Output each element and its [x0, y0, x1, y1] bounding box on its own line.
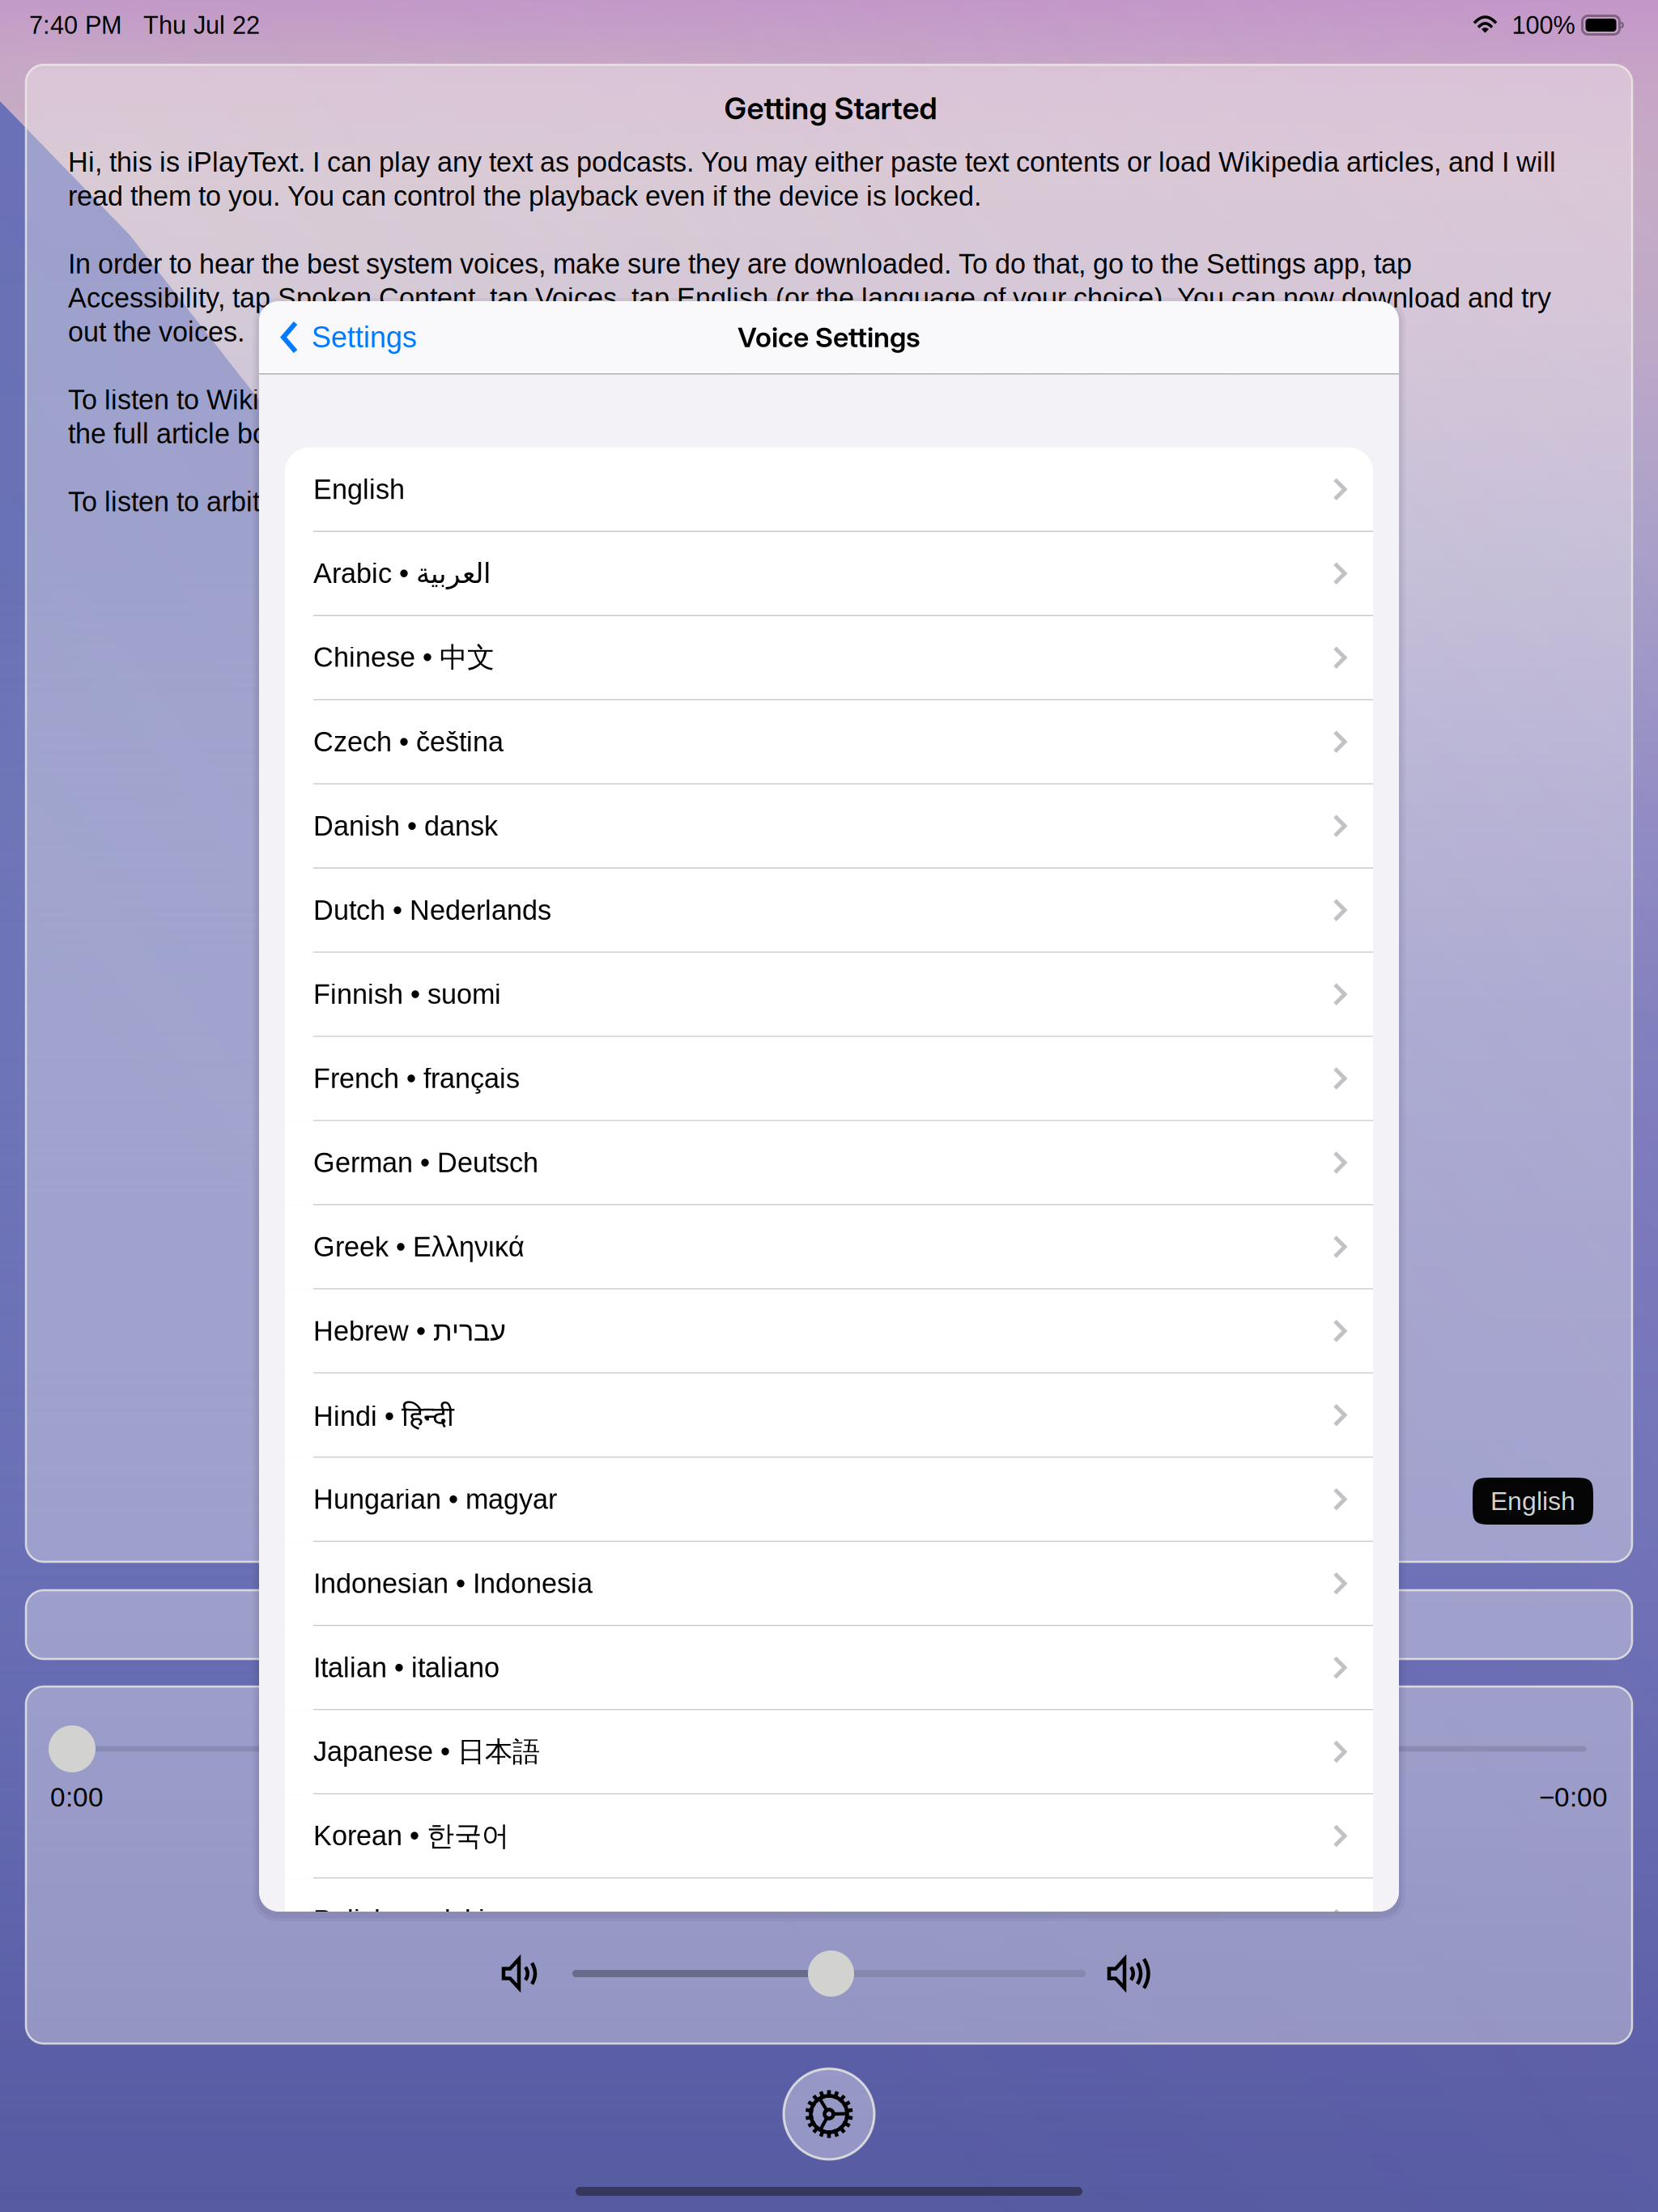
button[interactable]: Polish • polski	[285, 1879, 1373, 1963]
staticText: Hi, this is iPlayText. I can play any te…	[68, 145, 1556, 519]
staticText: Polish • polski	[313, 1903, 485, 1937]
staticText: Voice Settings	[738, 321, 920, 354]
button[interactable]: Wikipedia Original	[1148, 1590, 1428, 1659]
staticText: Chinese • 中文	[313, 639, 495, 677]
staticText: Wikipedia Introduction	[645, 1608, 916, 1642]
button[interactable]: Czech • čeština	[285, 700, 1373, 785]
staticText: Paste Text	[258, 1608, 386, 1642]
button[interactable]: Hindi • हिन्दी	[285, 1374, 1373, 1458]
button[interactable]: Chinese • 中文	[285, 616, 1373, 700]
staticText: Korean • 한국어	[313, 1817, 509, 1855]
staticText: Hebrew • עברית	[313, 1314, 506, 1348]
staticText: Arabic • العربية	[313, 556, 491, 591]
button[interactable]: Greek • Ελληνικά	[285, 1205, 1373, 1290]
staticText: Settings	[312, 321, 417, 353]
button[interactable]: Settings	[259, 301, 432, 373]
staticText: Hindi • हिन्दी	[313, 1394, 454, 1436]
button[interactable]: Indonesian • Indonesia	[285, 1542, 1373, 1626]
staticText: French • français	[313, 1061, 520, 1095]
staticText: Czech • čeština	[313, 725, 504, 759]
staticText: English	[1490, 1487, 1575, 1516]
staticText: Danish • dansk	[313, 809, 498, 843]
button[interactable]: German • Deutsch	[285, 1121, 1373, 1205]
button[interactable]: Korean • 한국어	[285, 1794, 1373, 1879]
staticText: 7:40 PM	[29, 11, 122, 39]
staticText: Thu Jul 22	[122, 11, 260, 39]
button[interactable]: French • français	[285, 1037, 1373, 1121]
button[interactable]: Italian • italiano	[285, 1626, 1373, 1710]
staticText: 0:00	[50, 1782, 104, 1812]
staticText: German • Deutsch	[313, 1146, 538, 1180]
staticText: Indonesian • Indonesia	[313, 1566, 593, 1600]
button[interactable]: English	[285, 448, 1373, 532]
button[interactable]: Settings	[776, 2061, 882, 2167]
staticText: Finnish • suomi	[313, 977, 501, 1011]
staticText: Japanese • 日本語	[313, 1733, 540, 1771]
staticText: Getting Started	[724, 90, 937, 126]
button[interactable]: Finnish • suomi	[285, 953, 1373, 1037]
button[interactable]: Japanese • 日本語	[285, 1710, 1373, 1795]
staticText: Wikipedia Original	[1176, 1608, 1400, 1642]
staticText: English	[313, 472, 405, 506]
staticText: Italian • italiano	[313, 1651, 500, 1685]
button[interactable]: Arabic • العربية	[285, 532, 1373, 616]
button[interactable]: Wikipedia Introduction	[618, 1590, 944, 1659]
staticText: Greek • Ελληνικά	[313, 1230, 525, 1264]
button[interactable]: Hungarian • magyar	[285, 1458, 1373, 1542]
staticText: 100%	[1497, 11, 1582, 39]
button[interactable]: Dutch • Nederlands	[285, 869, 1373, 953]
staticText: Dutch • Nederlands	[313, 893, 551, 927]
button[interactable]: Paste Text	[230, 1590, 413, 1659]
staticText: −0:00	[1539, 1782, 1608, 1812]
button[interactable]: Hebrew • עברית	[285, 1289, 1373, 1374]
staticText: Hungarian • magyar	[313, 1482, 557, 1516]
button[interactable]: Danish • dansk	[285, 784, 1373, 869]
